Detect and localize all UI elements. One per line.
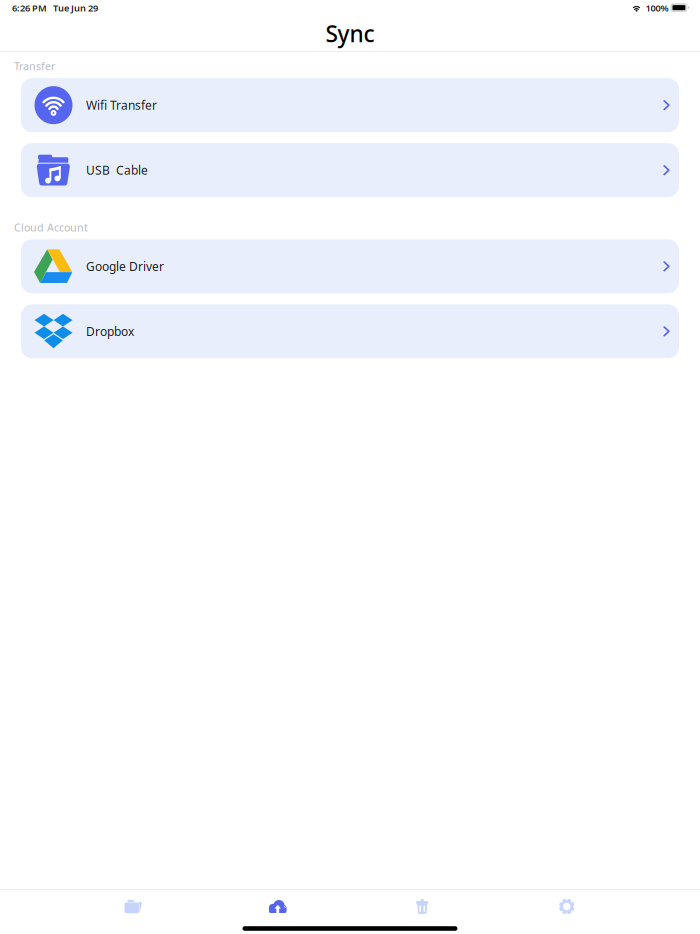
staticText: 6:26 PM <box>12 2 47 14</box>
button[interactable]: USB Cable <box>21 143 679 197</box>
button[interactable]: Sync <box>205 890 350 923</box>
staticText: Transfer <box>14 59 55 73</box>
button[interactable]: Wifi Transfer <box>21 78 679 132</box>
button[interactable]: Trash <box>350 890 494 923</box>
button[interactable]: Dropbox <box>21 304 679 358</box>
staticText: Dropbox <box>86 323 134 339</box>
staticText: Google Driver <box>86 258 164 274</box>
button[interactable]: Files <box>61 890 205 923</box>
staticText: Tue Jun 29 <box>53 2 98 14</box>
button[interactable]: Settings <box>494 890 639 923</box>
button[interactable]: Google Driver <box>21 239 679 293</box>
staticText: Cloud Account <box>14 220 88 234</box>
staticText: 100% <box>645 2 668 14</box>
staticText: USB Cable <box>86 162 148 178</box>
staticText: Sync <box>325 18 374 48</box>
staticText: Wifi Transfer <box>86 97 157 113</box>
